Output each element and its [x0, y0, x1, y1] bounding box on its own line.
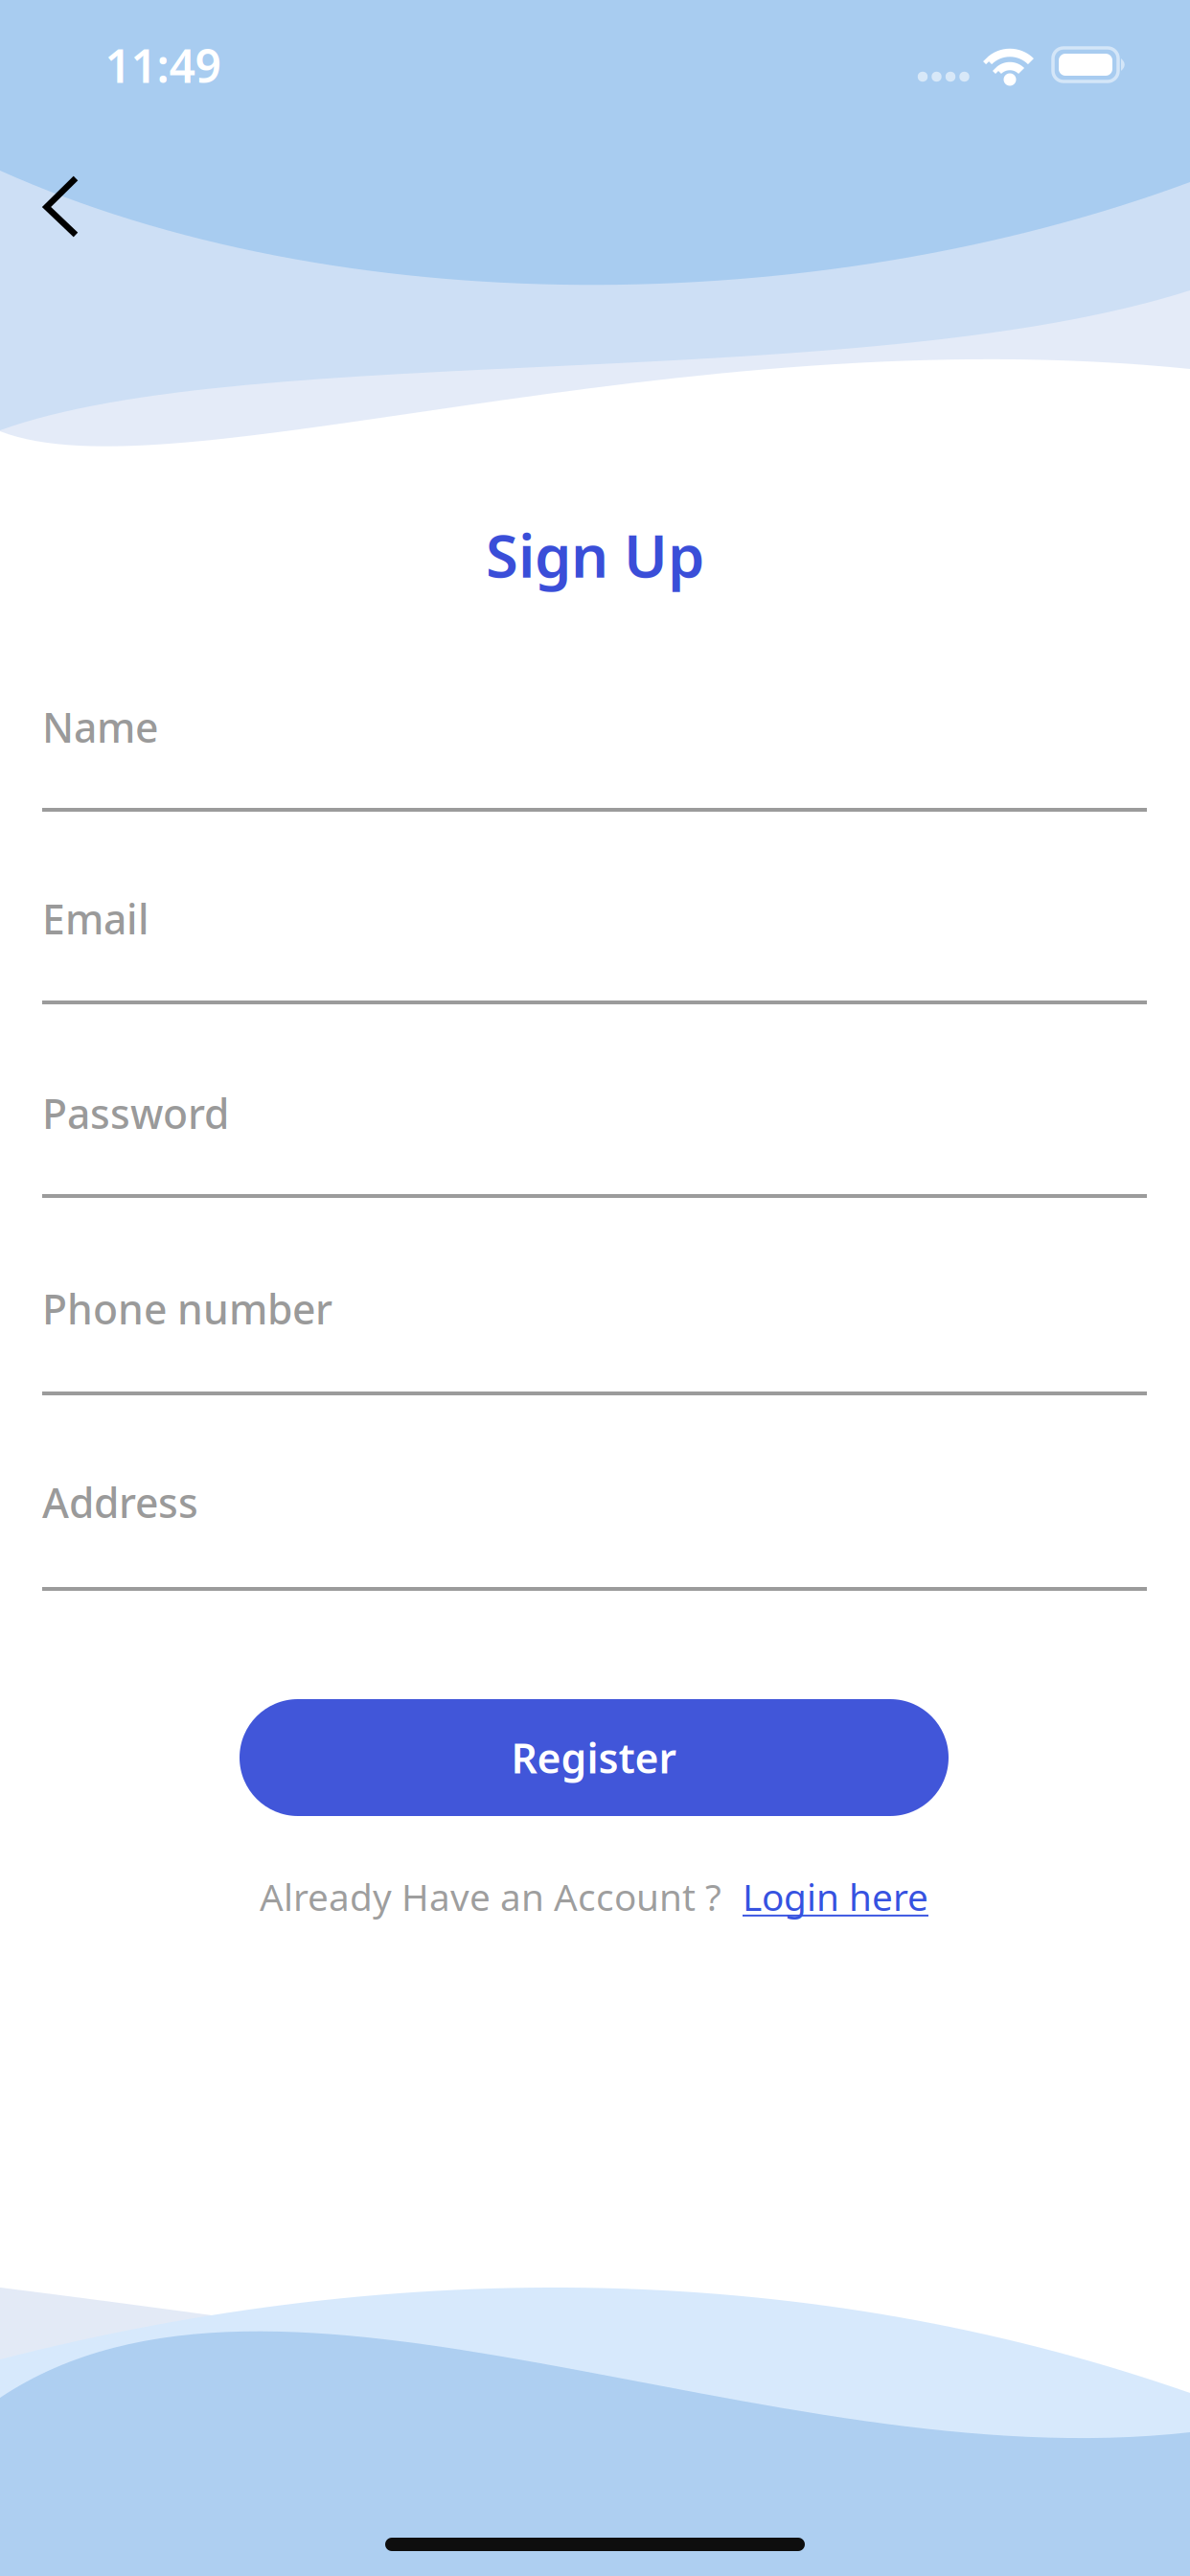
button[interactable]: Login here: [743, 1872, 928, 1921]
staticText: Already Have an Account ?: [260, 1872, 721, 1921]
button[interactable]: Name: [42, 700, 1147, 812]
staticText: Phone number: [42, 1281, 332, 1336]
staticText: Login here: [743, 1872, 928, 1921]
button[interactable]: Password: [42, 1086, 1147, 1198]
staticText: Name: [42, 700, 158, 754]
staticText: Sign Up: [486, 516, 704, 594]
staticText: 11:49: [105, 35, 221, 96]
button[interactable]: Register: [240, 1699, 949, 1816]
staticText: Password: [42, 1086, 229, 1140]
button[interactable]: Phone number: [42, 1281, 1147, 1395]
button[interactable]: Address: [42, 1475, 1147, 1591]
staticText: Address: [42, 1475, 198, 1529]
button[interactable]: Back: [23, 153, 128, 259]
button[interactable]: Email: [42, 891, 1147, 1004]
staticText: Email: [42, 891, 149, 946]
staticText: Register: [511, 1730, 677, 1785]
